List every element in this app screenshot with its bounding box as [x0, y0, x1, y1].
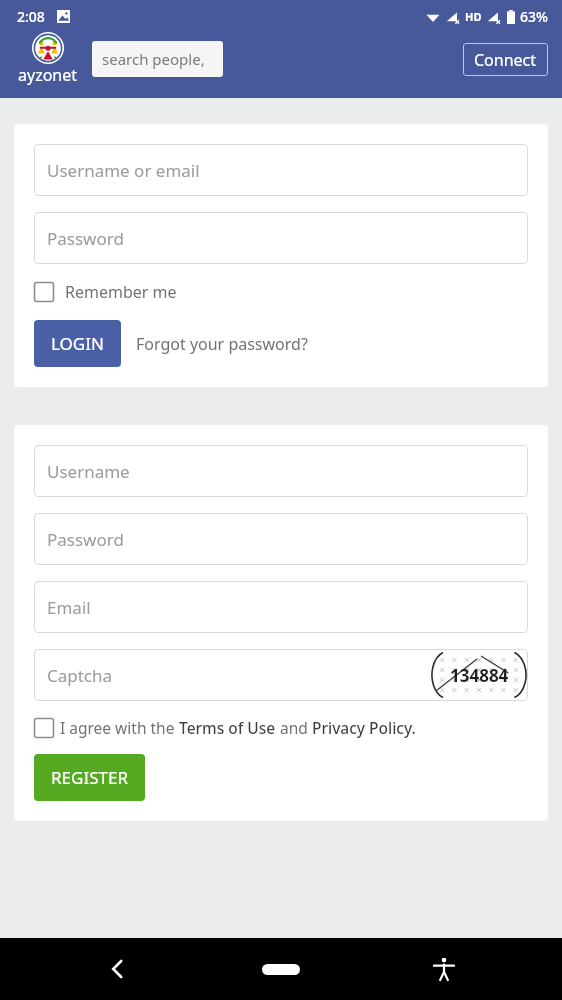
button[interactable]: Forgot your password?	[136, 333, 308, 355]
button[interactable]: I agree with the	[34, 717, 416, 738]
staticText: Connect	[474, 49, 537, 71]
button[interactable]: Home	[251, 949, 311, 989]
staticText: LOGIN	[51, 332, 104, 355]
staticText: Password	[47, 227, 124, 250]
staticText: Privacy Policy.	[312, 717, 416, 738]
staticText: Username	[47, 460, 130, 483]
button[interactable]: search people,	[92, 41, 223, 77]
button[interactable]: Password	[34, 513, 528, 565]
staticText: Terms of Use	[179, 717, 276, 738]
staticText: Username or email	[47, 159, 200, 182]
staticText: Password	[47, 528, 124, 551]
button[interactable]: REGISTER	[34, 754, 145, 801]
staticText: 134884	[450, 664, 509, 687]
button[interactable]: LOGIN	[34, 320, 121, 367]
other: Captcha image	[430, 650, 528, 700]
button[interactable]: Back	[96, 947, 140, 991]
staticText: Captcha	[47, 664, 113, 687]
staticText: I agree with the	[60, 717, 179, 738]
button[interactable]: Remember me	[34, 281, 177, 303]
staticText: and	[276, 717, 312, 738]
button[interactable]: Captcha	[34, 649, 528, 701]
button[interactable]: Password	[34, 212, 528, 264]
staticText: 63%	[520, 7, 548, 26]
staticText: ayzonet	[18, 64, 78, 86]
button[interactable]: ayzonet home	[14, 32, 82, 86]
staticText: Forgot your password?	[136, 333, 308, 355]
staticText: REGISTER	[51, 766, 128, 789]
button[interactable]: Username	[34, 445, 528, 497]
button[interactable]: Email	[34, 581, 528, 633]
staticText: 2:08	[17, 7, 45, 26]
staticText: Email	[47, 596, 91, 619]
button[interactable]: Username or email	[34, 144, 528, 196]
staticText: HD	[465, 9, 482, 24]
button[interactable]: Accessibility	[422, 947, 466, 991]
button[interactable]: Connect	[463, 43, 548, 76]
staticText: Remember me	[65, 281, 177, 303]
staticText: search people,	[102, 49, 205, 69]
